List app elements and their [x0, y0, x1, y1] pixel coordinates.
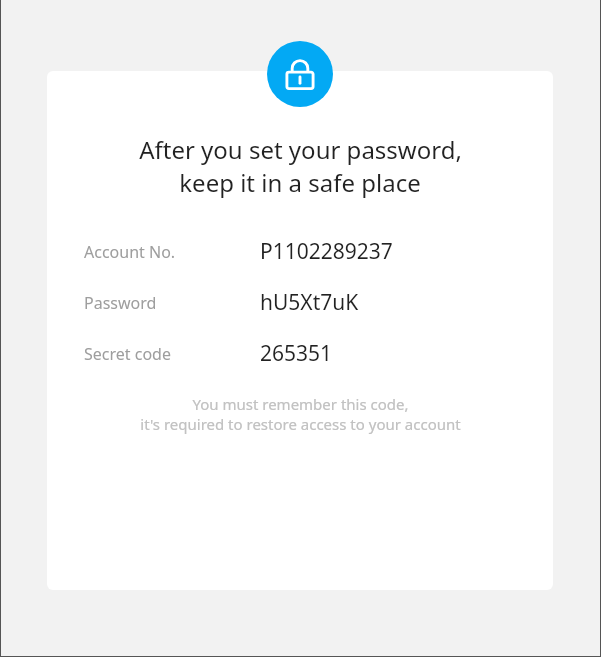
button[interactable]: Password	[47, 288, 553, 317]
button[interactable]: Secure password lock	[267, 41, 333, 107]
staticText: hU5Xt7uK	[260, 288, 359, 317]
staticText: keep it in a safe place	[179, 166, 421, 199]
staticText: Secret code	[84, 343, 171, 365]
staticText: You must remember this code,	[192, 394, 409, 414]
staticText: it's required to restore access to your …	[140, 414, 461, 434]
button[interactable]: Account No.	[47, 237, 553, 266]
staticText: P1102289237	[260, 237, 393, 266]
staticText: 265351	[260, 339, 333, 368]
staticText: Account No.	[84, 241, 176, 263]
staticText: Password	[84, 292, 157, 314]
button[interactable]: Secret code	[47, 339, 553, 368]
staticText: After you set your password,	[139, 133, 462, 166]
